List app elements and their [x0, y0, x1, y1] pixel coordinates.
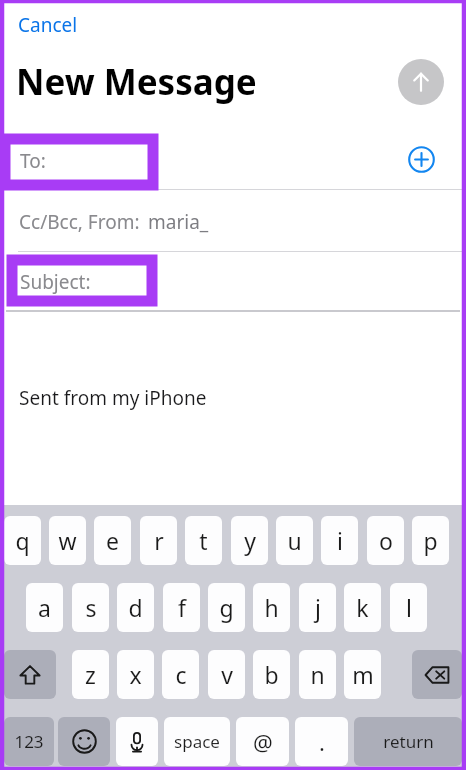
- staticText: a: [38, 592, 51, 623]
- button[interactable]: h: [253, 583, 290, 632]
- button[interactable]: b: [253, 650, 290, 699]
- staticText: return: [383, 730, 434, 753]
- staticText: n: [310, 659, 325, 690]
- staticText: h: [264, 592, 279, 623]
- button[interactable]: v: [208, 650, 245, 699]
- staticText: d: [128, 592, 143, 623]
- button[interactable]: Emoji: [58, 717, 110, 766]
- staticText: v: [221, 659, 233, 690]
- button[interactable]: w: [49, 516, 86, 565]
- staticText: w: [58, 525, 77, 556]
- staticText: i: [337, 525, 343, 556]
- staticText: g: [219, 592, 234, 623]
- button[interactable]: e: [94, 516, 131, 565]
- button[interactable]: d: [117, 583, 154, 632]
- button[interactable]: Send: [398, 59, 444, 105]
- button[interactable]: t: [185, 516, 222, 565]
- staticText: j: [315, 592, 321, 623]
- staticText: k: [356, 592, 369, 623]
- button[interactable]: Backspace: [412, 650, 462, 699]
- staticText: r: [154, 525, 164, 556]
- button[interactable]: z: [72, 650, 109, 699]
- button[interactable]: f: [163, 583, 200, 632]
- button[interactable]: Subject:: [0, 252, 466, 310]
- staticText: Cancel: [18, 12, 78, 38]
- button[interactable]: .: [295, 717, 348, 766]
- button[interactable]: Dictate: [116, 717, 158, 766]
- staticText: Sent from my iPhone: [19, 385, 207, 411]
- button[interactable]: m: [344, 650, 381, 699]
- button[interactable]: q: [4, 516, 41, 565]
- button[interactable]: n: [299, 650, 336, 699]
- staticText: t: [199, 525, 208, 556]
- staticText: c: [175, 659, 187, 690]
- button[interactable]: 123: [4, 717, 54, 766]
- staticText: o: [379, 525, 393, 556]
- staticText: x: [129, 659, 142, 690]
- button[interactable]: p: [412, 516, 449, 565]
- staticText: m: [352, 659, 374, 690]
- button[interactable]: To:: [0, 130, 466, 189]
- staticText: b: [264, 659, 279, 690]
- staticText: Cc/Bcc, From:: [19, 209, 140, 235]
- staticText: e: [106, 525, 119, 556]
- button[interactable]: k: [344, 583, 381, 632]
- button[interactable]: Shift: [4, 650, 56, 699]
- button[interactable]: At sign: [236, 717, 289, 766]
- staticText: y: [244, 525, 256, 556]
- button[interactable]: a: [26, 583, 63, 632]
- staticText: To:: [20, 148, 46, 174]
- button[interactable]: x: [117, 650, 154, 699]
- staticText: space: [174, 730, 220, 753]
- button[interactable]: s: [72, 583, 109, 632]
- button[interactable]: r: [140, 516, 177, 565]
- staticText: s: [85, 592, 97, 623]
- button[interactable]: space: [164, 717, 230, 766]
- staticText: .: [319, 727, 325, 757]
- staticText: New Message: [16, 58, 257, 106]
- button[interactable]: Cc/Bcc, From:: [0, 190, 466, 251]
- button[interactable]: i: [321, 516, 358, 565]
- staticText: l: [406, 592, 412, 623]
- button[interactable]: o: [367, 516, 404, 565]
- staticText: @: [253, 727, 273, 757]
- button[interactable]: j: [299, 583, 336, 632]
- button[interactable]: c: [162, 650, 199, 699]
- button[interactable]: Add contact: [407, 145, 436, 174]
- staticText: u: [287, 525, 302, 556]
- staticText: Subject:: [20, 269, 91, 295]
- staticText: p: [423, 525, 438, 556]
- staticText: 123: [14, 730, 44, 753]
- staticText: maria_: [148, 209, 209, 235]
- staticText: q: [15, 525, 30, 556]
- button[interactable]: u: [276, 516, 313, 565]
- button[interactable]: y: [231, 516, 268, 565]
- staticText: f: [178, 592, 186, 623]
- button[interactable]: Cancel: [17, 10, 79, 40]
- button[interactable]: l: [390, 583, 427, 632]
- button[interactable]: return: [354, 717, 462, 766]
- staticText: z: [85, 659, 96, 690]
- button[interactable]: g: [208, 583, 245, 632]
